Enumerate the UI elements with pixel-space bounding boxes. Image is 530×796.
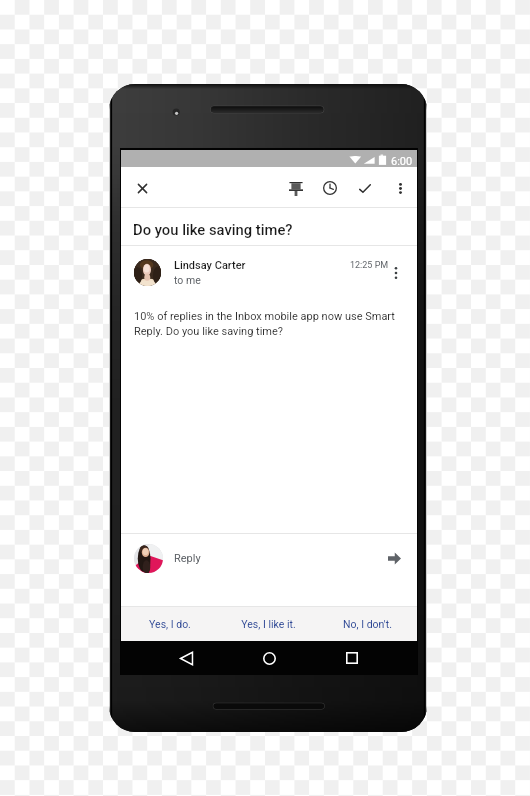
button[interactable]: No, I don't. bbox=[318, 607, 417, 641]
button[interactable]: Home bbox=[254, 643, 284, 673]
button[interactable]: Send bbox=[379, 543, 409, 573]
staticText: to me bbox=[174, 274, 201, 286]
staticText: 6:00 bbox=[391, 155, 413, 168]
staticText: 10% of replies in the Inbox mobile app n… bbox=[134, 310, 398, 338]
staticText: Do you like saving time? bbox=[133, 221, 293, 238]
staticText: Yes, I do. bbox=[149, 618, 191, 630]
button[interactable]: Yes, I like it. bbox=[219, 607, 318, 641]
button[interactable]: Recent apps bbox=[337, 643, 367, 673]
button[interactable]: Done bbox=[350, 174, 380, 204]
button[interactable]: Close bbox=[127, 173, 157, 203]
button[interactable]: More options bbox=[385, 173, 415, 203]
button[interactable] bbox=[121, 534, 417, 606]
button[interactable]: Message options bbox=[381, 258, 411, 288]
staticText: Yes, I like it. bbox=[241, 618, 296, 630]
staticText: Reply bbox=[174, 552, 201, 565]
staticText: 12:25 PM bbox=[350, 260, 389, 271]
button[interactable]: Back bbox=[171, 643, 201, 673]
staticText: No, I don't. bbox=[343, 618, 392, 630]
staticText: Lindsay Carter bbox=[174, 259, 246, 272]
button[interactable]: Pin bbox=[281, 174, 311, 204]
button[interactable]: Yes, I do. bbox=[121, 607, 219, 641]
button[interactable]: Snooze bbox=[315, 173, 345, 203]
